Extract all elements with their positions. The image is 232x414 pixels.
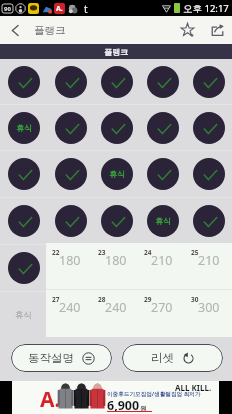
button[interactable]: 30 [185,290,232,337]
button[interactable] [0,151,47,197]
button[interactable] [47,105,94,150]
staticText: 240 [105,299,127,316]
button[interactable]: 휴식 [140,198,186,244]
staticText: 휴식 [16,123,32,133]
button[interactable]: 휴식 [0,292,47,338]
staticText: 6,900 [107,397,140,414]
button[interactable] [47,245,94,291]
button[interactable]: 27 [46,290,92,337]
button[interactable] [186,245,232,291]
staticText: 210 [198,252,220,269]
staticText: 240 [59,299,81,316]
staticText: 29 [144,295,152,304]
button[interactable] [186,105,232,150]
staticText: ALL KILL. [175,382,212,393]
staticText: 원 [140,405,147,413]
staticText: 210 [151,252,173,269]
staticText: 플랭크 [104,47,128,57]
button[interactable] [94,245,140,291]
button[interactable] [0,245,47,291]
button[interactable] [140,105,186,150]
button[interactable]: Back [0,16,30,44]
button[interactable] [186,151,232,197]
button[interactable] [0,198,47,244]
button[interactable] [47,198,94,244]
staticText: 180 [105,252,127,269]
button[interactable] [186,198,232,244]
button[interactable]: 29 [138,290,185,337]
staticText: 휴식 [15,310,32,321]
button[interactable] [47,151,94,197]
button[interactable]: 28 [92,290,138,337]
button[interactable]: Add to favorites [172,16,202,44]
staticText: 28 [98,295,106,304]
button[interactable] [94,292,140,338]
button[interactable]: 휴식 [94,151,140,197]
staticText: t [84,2,88,15]
button[interactable]: 동작설명 [11,344,112,372]
staticText: 180 [59,252,81,269]
staticText: 27 [52,295,60,304]
staticText: A. [56,4,63,14]
button[interactable]: 23 [92,243,138,289]
staticText: 24 [144,248,152,257]
button[interactable] [186,59,232,104]
staticText: 휴식 [155,216,171,226]
staticText: 리셋 [151,351,174,365]
staticText: 22 [52,248,60,257]
button[interactable] [94,105,140,150]
staticText: 30 [191,295,199,304]
button[interactable] [186,292,232,338]
staticText: 휴식 [109,169,125,179]
button[interactable] [140,59,186,104]
button[interactable]: 리셋 [122,344,223,372]
staticText: 이중후드기모집업/생활털집업 최저가 [107,390,201,398]
button[interactable] [94,59,140,104]
staticText: 동작설명 [28,351,74,365]
button[interactable]: 25 [185,243,232,289]
staticText: 플랭크 [34,24,66,37]
button[interactable]: 22 [46,243,92,289]
button[interactable] [140,292,186,338]
button[interactable] [47,292,94,338]
staticText: 270 [151,299,173,316]
button[interactable]: 휴식 [0,105,47,150]
staticText: 오후 12:17 [183,2,229,15]
staticText: 90 [4,5,11,13]
button[interactable]: A. [12,381,219,414]
button[interactable] [140,151,186,197]
button[interactable]: Share [202,16,232,44]
button[interactable] [0,59,47,104]
button[interactable] [140,245,186,291]
staticText: A. [40,385,61,414]
staticText: 300 [198,299,220,316]
button[interactable] [94,198,140,244]
staticText: 23 [98,248,106,257]
button[interactable] [47,59,94,104]
button[interactable]: 24 [138,243,185,289]
staticText: 25 [191,248,199,257]
